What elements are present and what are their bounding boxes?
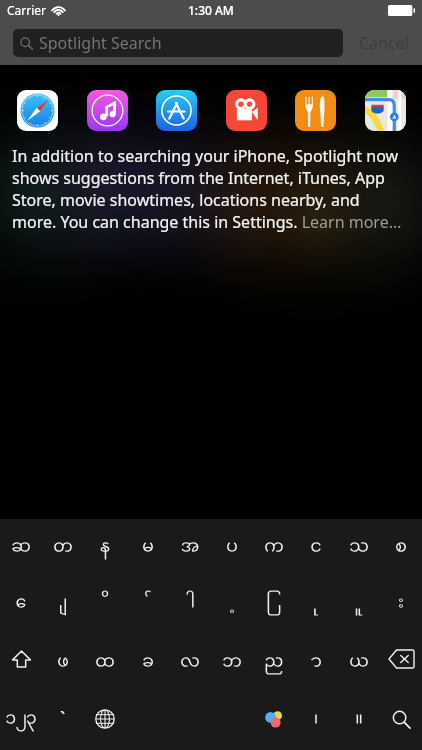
button[interactable] — [380, 577, 422, 629]
button[interactable] — [295, 577, 337, 629]
button[interactable]: Safari — [17, 90, 58, 131]
button[interactable]: Section mark — [295, 691, 337, 747]
staticText: 1:30 AM — [188, 2, 234, 18]
staticText: Carrier — [7, 2, 47, 18]
button[interactable] — [84, 577, 126, 629]
button[interactable] — [253, 577, 295, 629]
button[interactable]: Movies — [226, 90, 267, 131]
button[interactable]: Emoji — [253, 691, 295, 747]
button[interactable]: Next keyboard — [84, 691, 126, 747]
button[interactable] — [211, 577, 253, 629]
button[interactable] — [253, 521, 295, 573]
button[interactable] — [338, 636, 380, 688]
button[interactable] — [169, 636, 211, 688]
staticText: ` — [60, 706, 66, 732]
button[interactable] — [42, 521, 84, 573]
button[interactable] — [42, 636, 84, 688]
button[interactable]: App Store — [156, 90, 197, 131]
button[interactable]: Maps — [365, 90, 406, 131]
button[interactable] — [338, 577, 380, 629]
button[interactable]: Cancel — [357, 29, 411, 57]
button[interactable] — [84, 521, 126, 573]
button[interactable]: Numbers — [0, 691, 42, 747]
button[interactable] — [295, 636, 337, 688]
button[interactable] — [84, 636, 126, 688]
button[interactable] — [211, 636, 253, 688]
button[interactable] — [295, 521, 337, 573]
button[interactable]: ` — [42, 691, 84, 747]
button[interactable] — [0, 577, 42, 629]
button[interactable]: Shift — [0, 633, 42, 685]
button[interactable]: iTunes — [87, 90, 128, 131]
button[interactable] — [169, 577, 211, 629]
button[interactable] — [380, 521, 422, 573]
button[interactable]: Restaurants — [295, 90, 336, 131]
button[interactable]: Double section mark — [338, 691, 380, 747]
button[interactable] — [127, 577, 169, 629]
button[interactable] — [42, 577, 84, 629]
staticText: In addition to searching your iPhone, Sp… — [12, 145, 404, 233]
button[interactable] — [169, 521, 211, 573]
button[interactable] — [0, 521, 42, 573]
button[interactable] — [253, 636, 295, 688]
button[interactable] — [127, 636, 169, 688]
button[interactable]: Delete — [380, 633, 422, 685]
button[interactable] — [127, 521, 169, 573]
button[interactable] — [211, 521, 253, 573]
button[interactable] — [338, 521, 380, 573]
button[interactable]: Spotlight Search — [13, 29, 343, 57]
button[interactable]: Search — [380, 691, 422, 747]
staticText: Cancel — [359, 32, 409, 54]
staticText: Spotlight Search — [39, 32, 162, 54]
